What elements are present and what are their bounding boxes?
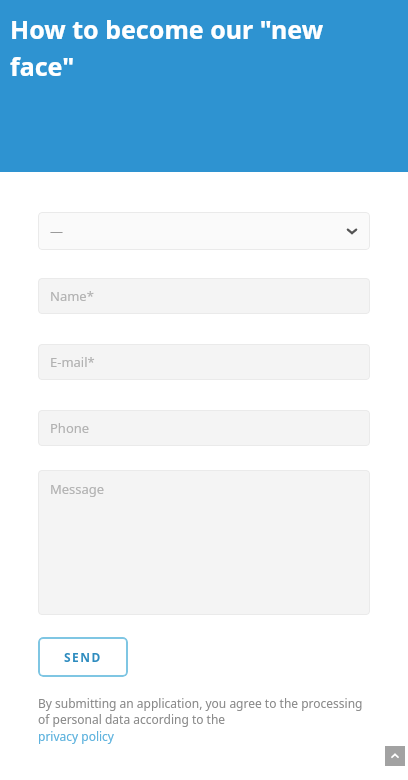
button[interactable]: Name* — [38, 278, 370, 314]
staticText: E-mail* — [50, 353, 95, 371]
staticText: SEND — [64, 649, 102, 665]
button[interactable]: Phone — [38, 410, 370, 446]
staticText: — — [50, 222, 64, 240]
staticText: By submitting an application, you agree … — [38, 695, 370, 728]
staticText: Message — [50, 480, 105, 498]
staticText: Name* — [50, 287, 94, 305]
button[interactable]: Scroll to top — [385, 746, 405, 766]
staticText: Phone — [50, 419, 90, 437]
button[interactable]: E-mail* — [38, 344, 370, 380]
button[interactable]: SEND — [38, 637, 128, 677]
button[interactable]: Message — [38, 470, 370, 615]
staticText: How to become our "new face" — [10, 12, 392, 83]
button[interactable]: privacy policy — [38, 728, 114, 744]
button[interactable]: — — [38, 212, 370, 250]
staticText: privacy policy — [38, 728, 114, 744]
